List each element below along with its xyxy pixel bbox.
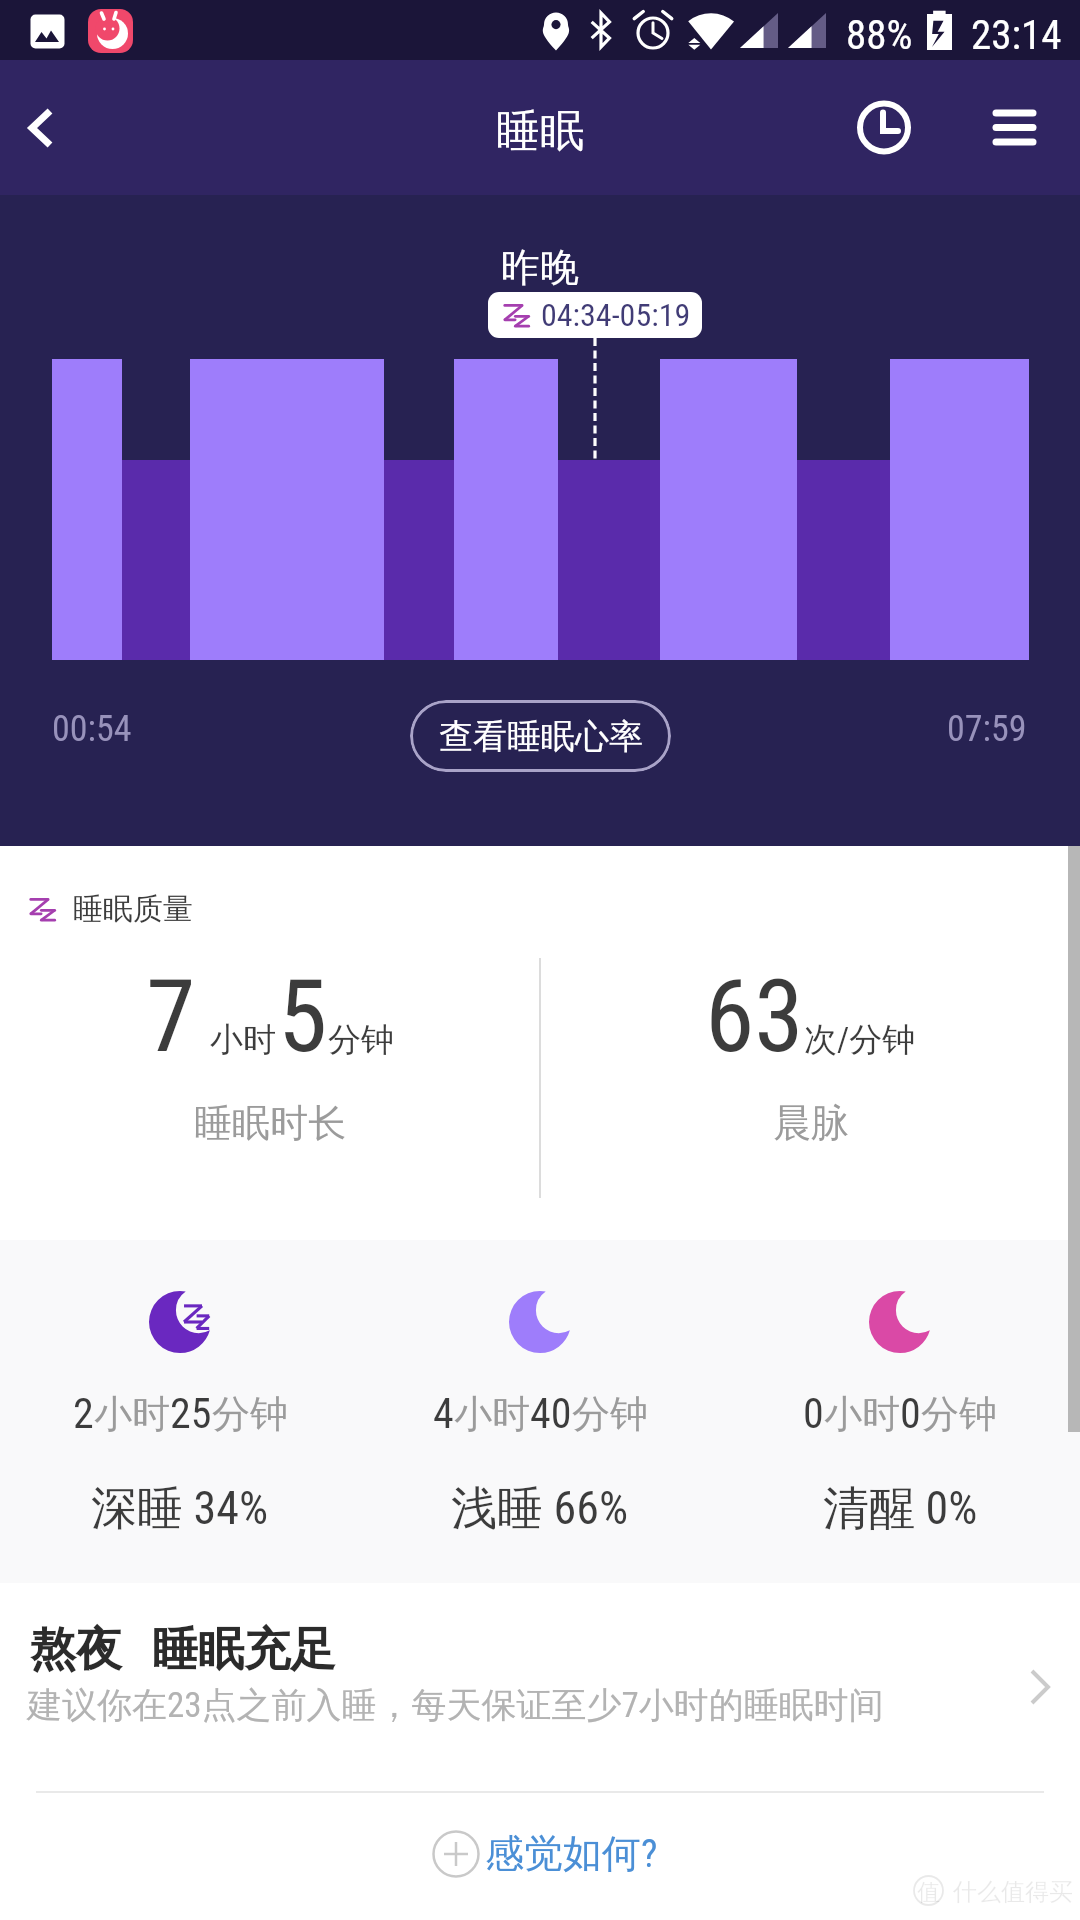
staticText: 4 xyxy=(433,1389,454,1438)
staticText: 7 xyxy=(146,958,196,1075)
staticText: 23:14 xyxy=(971,11,1062,59)
button[interactable]: 熬夜 xyxy=(0,1583,1080,1788)
staticText: 熬夜 xyxy=(30,1621,122,1679)
button[interactable]: Sleep history xyxy=(824,60,944,195)
staticText: 浅睡 66% xyxy=(451,1480,629,1538)
staticText: 值 xyxy=(917,1878,940,1907)
staticText: 查看睡眠心率 xyxy=(439,715,643,758)
staticText: 25 xyxy=(170,1389,212,1438)
staticText: 次/分钟 xyxy=(804,1019,916,1061)
button[interactable]: Menu xyxy=(956,60,1074,195)
staticText: 2 xyxy=(73,1389,94,1438)
staticText: 88% xyxy=(846,11,913,59)
staticText: 小时 xyxy=(94,1390,170,1438)
staticText: 小时 xyxy=(210,1019,276,1061)
button[interactable]: 感觉如何? xyxy=(428,1821,657,1887)
staticText: 小时 xyxy=(454,1390,530,1438)
staticText: 晨脉 xyxy=(773,1099,849,1147)
staticText: 感觉如何? xyxy=(485,1829,658,1878)
staticText: 63 xyxy=(705,958,804,1075)
staticText: 昨晚 xyxy=(501,243,579,292)
staticText: 建议你在23点之前入睡，每天保证至少7小时的睡眠时间 xyxy=(27,1683,884,1727)
staticText: 什么值得买 xyxy=(953,1877,1073,1907)
button[interactable]: Back xyxy=(0,68,96,188)
staticText: 07:59 xyxy=(947,708,1027,750)
staticText: 0 xyxy=(900,1389,921,1438)
button[interactable]: 查看睡眠心率 xyxy=(410,700,671,772)
staticText: 分钟 xyxy=(572,1390,648,1438)
staticText: 分钟 xyxy=(921,1390,997,1438)
staticText: 04:34-05:19 xyxy=(541,296,691,334)
staticText: 00:54 xyxy=(52,708,132,750)
staticText: 深睡 34% xyxy=(91,1480,269,1538)
staticText: 分钟 xyxy=(328,1019,394,1061)
staticText: 睡眠时长 xyxy=(194,1099,346,1147)
staticText: 小时 xyxy=(824,1390,900,1438)
staticText: 5 xyxy=(278,958,328,1075)
staticText: 睡眠质量 xyxy=(73,890,193,928)
staticText: 分钟 xyxy=(212,1390,288,1438)
staticText: 睡眠充足 xyxy=(152,1621,336,1679)
staticText: 清醒 0% xyxy=(823,1480,978,1538)
staticText: 0 xyxy=(803,1389,824,1438)
staticText: 40 xyxy=(530,1389,572,1438)
staticText: 睡眠 xyxy=(496,104,584,159)
